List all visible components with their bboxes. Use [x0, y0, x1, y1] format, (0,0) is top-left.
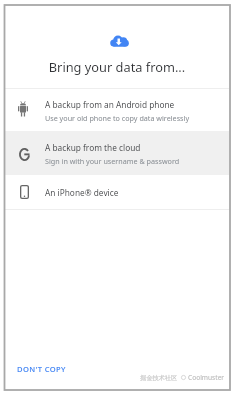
button[interactable]: DON'T COPY [5, 357, 66, 381]
button[interactable]: Android phone [5, 89, 229, 131]
other: Restore from cloud backup [110, 35, 129, 47]
button[interactable]: iPhone device [5, 175, 229, 209]
button[interactable]: Google account [5, 131, 229, 175]
staticText: Use your old phone to copy data wireless… [45, 113, 190, 123]
staticText: A backup from the cloud [45, 142, 141, 153]
staticText: Sign in with your username & password [45, 156, 180, 166]
other: Google account [13, 141, 33, 163]
staticText: A backup from an Android phone [45, 99, 175, 110]
staticText: Coolmuster [188, 373, 225, 382]
staticText: An iPhone® device [45, 187, 119, 198]
staticText: Bring your data from... [5, 58, 229, 75]
staticText: 掘金技术社区 [140, 374, 178, 382]
other: iPhone device [13, 179, 33, 201]
staticText: DON'T COPY [17, 364, 66, 374]
other: Android phone [13, 98, 33, 120]
